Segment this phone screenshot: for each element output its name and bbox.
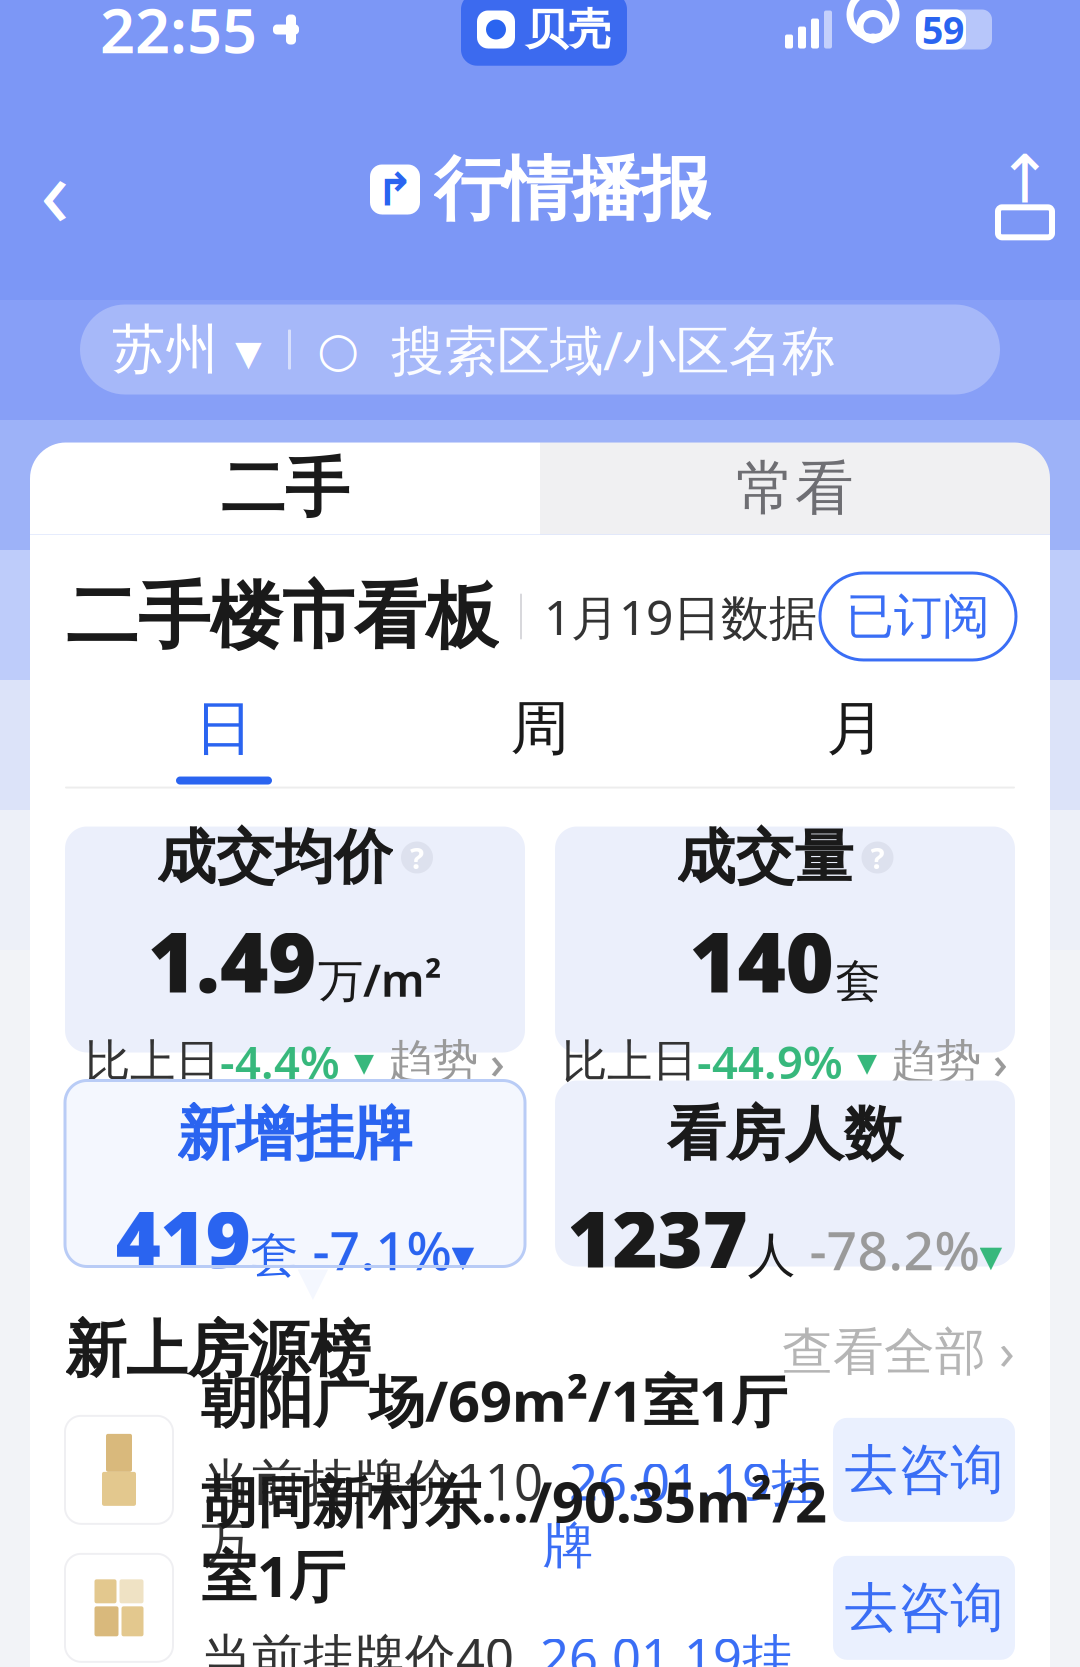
staticText: -7.1%	[298, 1214, 451, 1285]
staticText: 26.01.19挂牌	[514, 1622, 793, 1667]
staticText: 趋势	[891, 1034, 981, 1089]
staticText: 朝阳广场/69m²/1室1厅	[201, 1363, 787, 1437]
staticText: 人	[747, 1226, 795, 1285]
staticText: 1月19日数据	[544, 585, 817, 648]
staticText: 搜索区域/小区名称	[359, 314, 835, 385]
button[interactable]: 周	[382, 690, 698, 786]
button[interactable]: 分享	[970, 139, 1080, 239]
staticText: 套	[250, 1226, 298, 1285]
staticText: 月	[826, 692, 885, 765]
staticText: ‹	[40, 126, 70, 253]
staticText: -78.2%	[795, 1214, 979, 1285]
button[interactable]: 看房人数	[555, 1080, 1015, 1266]
staticText: 苏州 ▾	[112, 317, 262, 382]
staticText: -4.4%	[220, 1031, 340, 1091]
staticText: 贝壳	[525, 3, 611, 56]
staticText: 22:55	[100, 0, 257, 70]
staticText: ›	[478, 1031, 505, 1091]
button[interactable]: 查看全部 ›	[782, 1316, 1015, 1384]
staticText: ▾	[843, 1039, 891, 1084]
button[interactable]: 朝阳广场/69m²/1室1厅	[65, 1414, 1015, 1526]
button[interactable]: 已订阅	[820, 573, 1016, 660]
staticText: 趋势	[388, 1034, 478, 1089]
staticText: 419	[115, 1186, 250, 1289]
button[interactable]: 苏州 ▾	[80, 304, 1000, 394]
button[interactable]: 新增挂牌	[65, 1080, 525, 1266]
staticText: 二手	[221, 449, 349, 528]
button[interactable]: 常看	[540, 442, 1050, 534]
staticText: 日	[194, 692, 253, 765]
staticText: ↑	[997, 142, 1053, 217]
staticText: 当前挂牌价40万	[201, 1622, 514, 1667]
button[interactable]: 月	[698, 690, 1014, 786]
staticText: ?	[410, 838, 424, 877]
staticText: 周	[510, 692, 569, 765]
staticText: 1.49	[148, 905, 316, 1015]
staticText: ↱	[376, 164, 414, 215]
staticText: 新上房源榜	[65, 1312, 370, 1388]
staticText: 比上日	[562, 1034, 697, 1089]
staticText: ?	[870, 838, 884, 877]
staticText: 胡同新村东.../90.35m²/2室1厅	[201, 1464, 827, 1612]
button[interactable]: 成交均价	[65, 826, 525, 1052]
staticText: 看房人数	[667, 1098, 903, 1170]
staticText: 去咨询	[844, 1575, 1003, 1641]
button[interactable]: 日	[66, 690, 382, 786]
staticText: 已订阅	[846, 587, 990, 646]
staticText: 查看全部 ›	[782, 1316, 1015, 1384]
staticText: 140	[689, 905, 833, 1015]
staticText: 二手楼市看板	[66, 572, 498, 661]
staticText: 常看	[736, 452, 854, 525]
button[interactable]: 成交量	[555, 826, 1015, 1052]
staticText: ▾	[451, 1229, 474, 1281]
button[interactable]: 返回	[0, 139, 110, 239]
staticText: ▾	[297, 1245, 328, 1314]
staticText: ›	[981, 1031, 1008, 1091]
staticText: 新增挂牌	[177, 1098, 413, 1170]
staticText: -44.9%	[697, 1031, 843, 1091]
staticText: 成交量	[676, 821, 853, 894]
staticText: ▾	[979, 1229, 1002, 1281]
staticText: 1237	[567, 1186, 747, 1289]
staticText: 套	[835, 954, 880, 1009]
staticText: 当前挂牌价110万	[201, 1447, 543, 1577]
staticText: 59	[922, 5, 964, 54]
staticText: 行情播报	[434, 147, 710, 232]
staticText: 成交均价	[157, 821, 393, 894]
staticText: 万/m²	[318, 949, 442, 1009]
staticText: 26.01.19挂牌	[543, 1447, 822, 1577]
button[interactable]: 胡同新村东.../90.35m²/2室1厅	[65, 1552, 1015, 1664]
staticText: ▾	[340, 1039, 388, 1084]
staticText: ○	[317, 322, 359, 377]
staticText: 比上日	[85, 1034, 220, 1089]
staticText: 去咨询	[844, 1437, 1003, 1503]
button[interactable]: 二手	[30, 442, 540, 534]
